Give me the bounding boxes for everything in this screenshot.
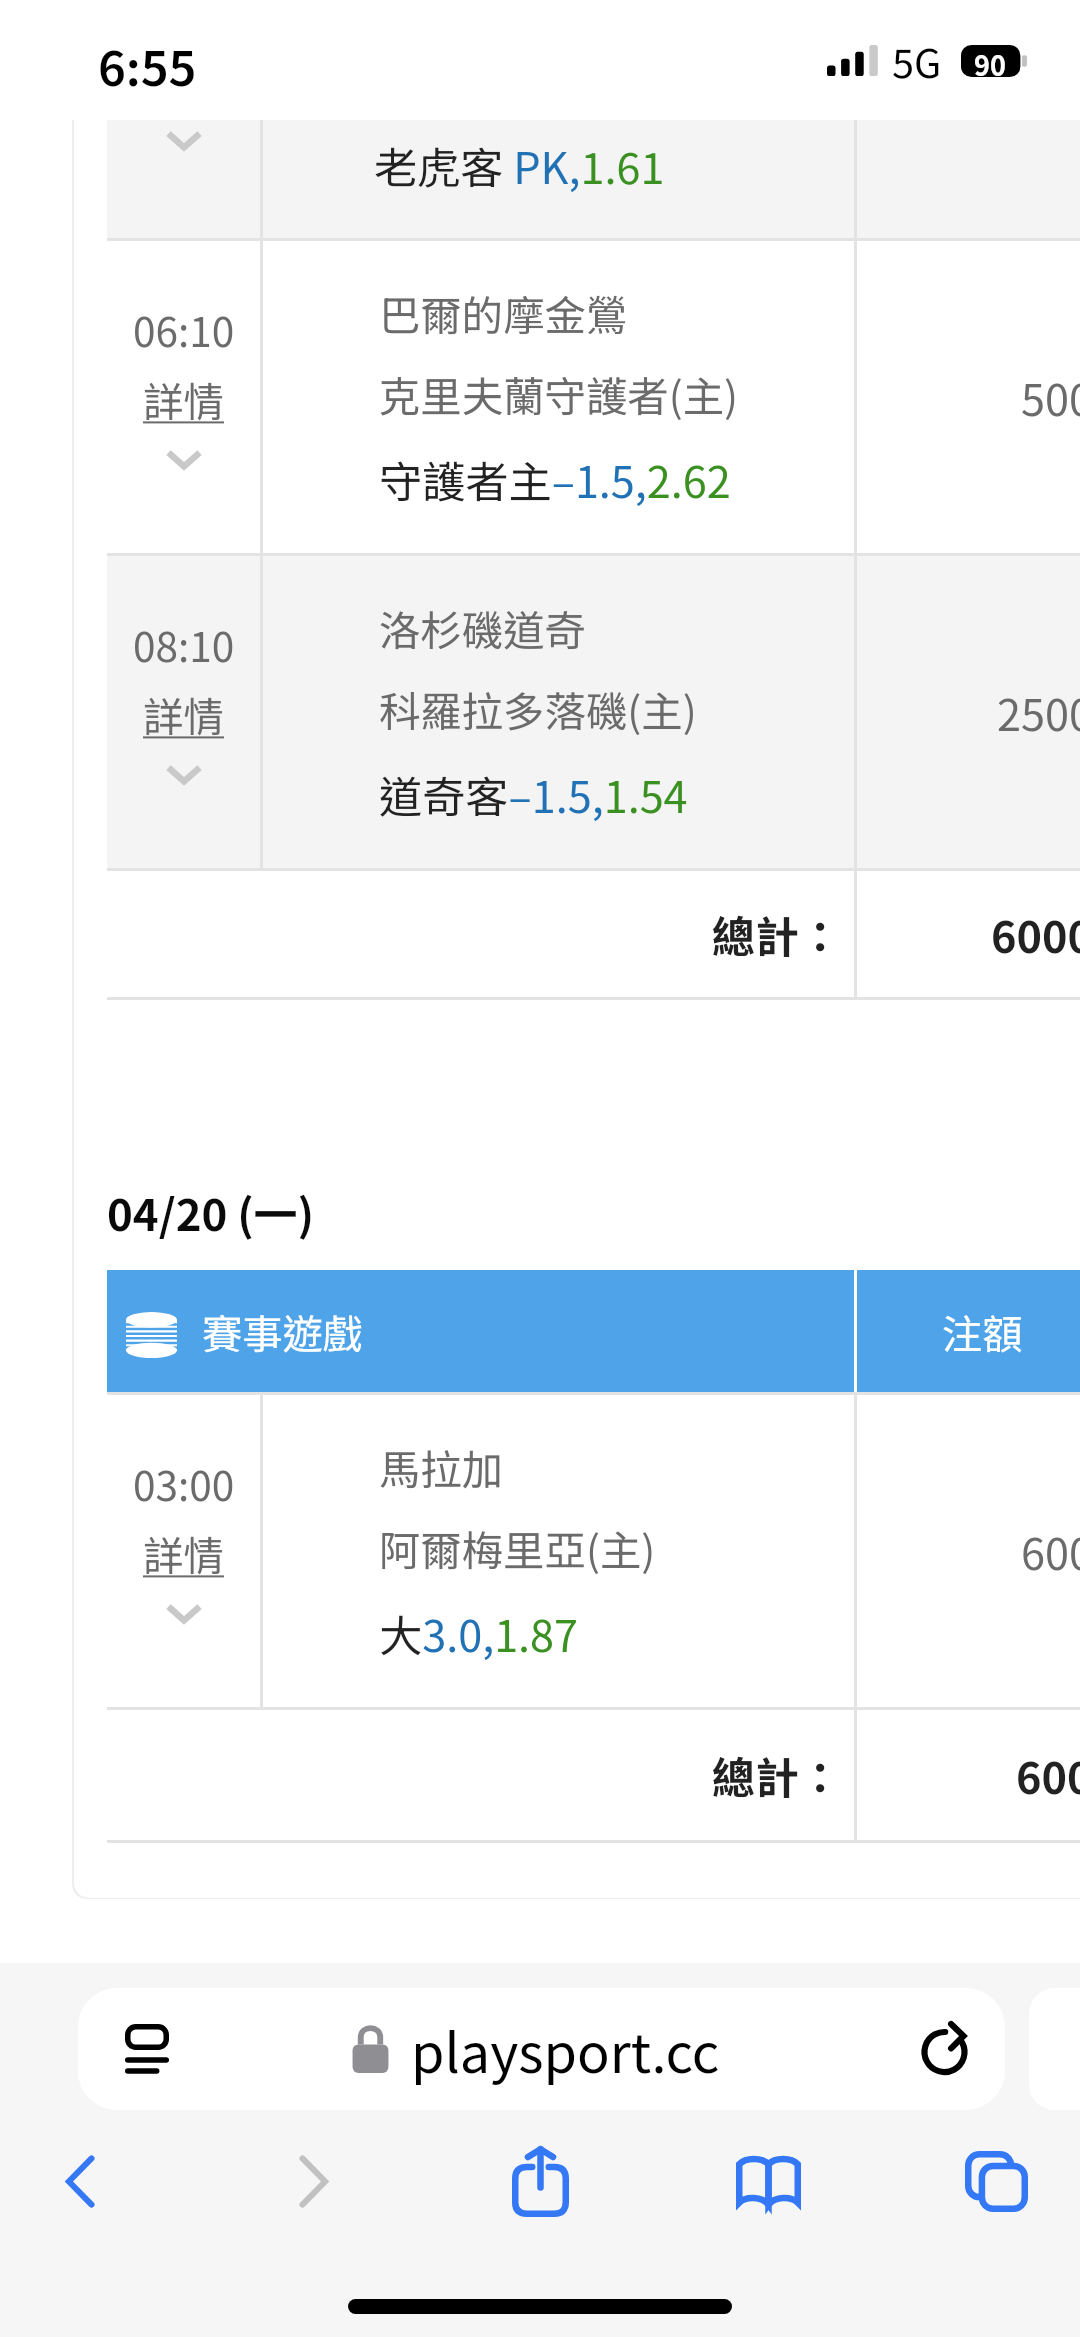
button[interactable]: Share (468, 2121, 612, 2241)
button[interactable]: 08:10 (107, 556, 1080, 868)
staticText: 2500 (997, 681, 1080, 744)
staticText: 06:10 (133, 300, 235, 359)
button[interactable]: Page settings (125, 2004, 169, 2094)
staticText: 90 (974, 45, 1006, 77)
staticText: 注額 (942, 1302, 1023, 1360)
button[interactable]: Page settings (78, 1988, 1005, 2110)
staticText: 老虎客 PK,1.61 (374, 134, 665, 197)
staticText: 08:10 (133, 615, 235, 674)
button[interactable]: 老虎客 PK,1.61 (107, 120, 1080, 238)
button[interactable]: Bookmarks (696, 2121, 840, 2241)
button[interactable]: Back (8, 2121, 152, 2241)
staticText: 道奇客–1.5,1.54 (379, 763, 688, 826)
staticText: 600 (1021, 1520, 1080, 1583)
staticText: 大3.0,1.87 (379, 1602, 579, 1665)
staticText: 03:00 (133, 1454, 235, 1513)
staticText: 600 (1016, 1744, 1080, 1807)
button[interactable]: 賽事遊戲 (107, 1270, 1080, 1392)
staticText: 馬拉加 (379, 1437, 504, 1497)
button[interactable]: Forward (241, 2121, 385, 2241)
staticText: 04/20 (一) (107, 1180, 315, 1243)
staticText: 賽事遊戲 (202, 1302, 363, 1360)
staticText: 守護者主–1.5,2.62 (379, 448, 731, 511)
staticText: 總計： (712, 1744, 842, 1807)
staticText: 詳情 (143, 685, 224, 744)
staticText: 500 (1021, 366, 1080, 429)
button[interactable]: Tabs (924, 2121, 1068, 2241)
button[interactable]: 03:00 (107, 1395, 1080, 1707)
staticText: 總計： (712, 903, 842, 966)
staticText: 巴爾的摩金鶯 (379, 283, 628, 343)
staticText: 阿爾梅里亞(主) (379, 1518, 656, 1578)
staticText: 6:55 (98, 30, 197, 100)
staticText: 6000 (991, 903, 1080, 966)
button[interactable]: Reload (913, 2004, 976, 2094)
staticText: 5G (892, 32, 942, 89)
staticText: 克里夫蘭守護者(主) (379, 364, 739, 424)
staticText: playsport.cc (411, 2010, 720, 2088)
staticText: 詳情 (143, 370, 224, 429)
button[interactable]: 06:10 (107, 241, 1080, 553)
staticText: 詳情 (143, 1524, 224, 1583)
staticText: 洛杉磯道奇 (379, 598, 586, 658)
staticText: 科羅拉多落磯(主) (379, 679, 697, 739)
